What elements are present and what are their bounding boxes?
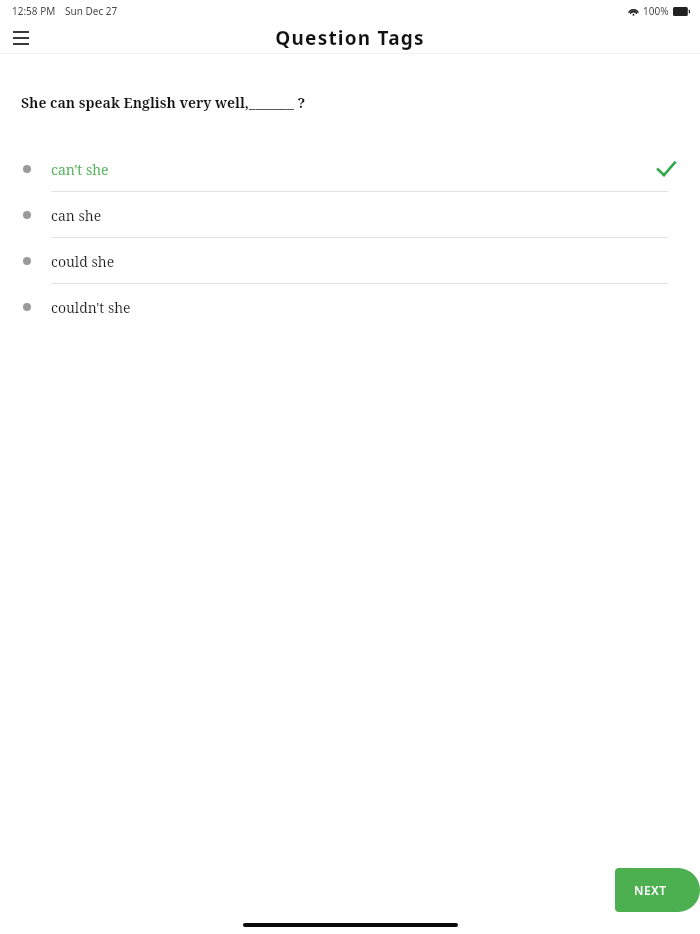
staticText: She can speak English very well,_______ …	[21, 93, 306, 112]
button[interactable]: could she	[0, 238, 700, 284]
staticText: can't she	[51, 160, 109, 179]
button[interactable]: couldn't she	[0, 284, 700, 330]
staticText: 100%	[643, 4, 669, 18]
staticText: Sun Dec 27	[65, 4, 118, 18]
button[interactable]: NEXT	[615, 868, 700, 912]
staticText: Question Tags	[275, 25, 425, 51]
button[interactable]: Open navigation menu	[8, 25, 34, 51]
button[interactable]: can't she	[0, 146, 700, 192]
staticText: can she	[51, 206, 102, 225]
button[interactable]: can she	[0, 192, 700, 238]
staticText: NEXT	[634, 882, 667, 898]
staticText: 12:58 PM	[12, 4, 56, 18]
staticText: could she	[51, 252, 115, 271]
staticText: couldn't she	[51, 298, 131, 317]
